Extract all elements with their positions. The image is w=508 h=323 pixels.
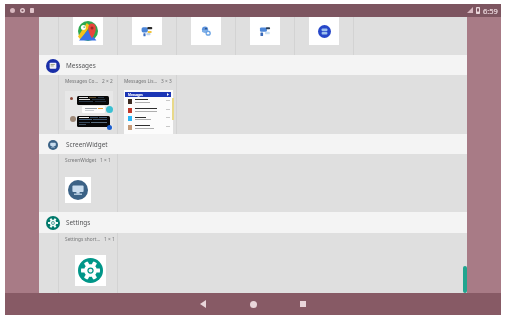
staticText: Messages: [128, 93, 143, 97]
button[interactable]: Messages Lis…: [118, 75, 176, 134]
button[interactable]: Messages: [39, 55, 467, 75]
button[interactable]: Recent apps: [278, 293, 328, 315]
staticText: 1 × 1: [104, 236, 115, 243]
staticText: 1 × 1: [100, 157, 111, 164]
button[interactable]: Photos: [177, 17, 235, 55]
staticText: 3 × 3: [161, 78, 172, 85]
button[interactable]: ScreenWidget: [59, 154, 117, 212]
button[interactable]: Messages Co…: [59, 75, 117, 134]
staticText: 6:59: [483, 6, 498, 16]
button[interactable]: Drive: [236, 17, 294, 55]
staticText: Messages Lis…: [124, 78, 158, 85]
staticText: Messages Co…: [65, 78, 99, 85]
staticText: Settings short…: [65, 236, 101, 243]
staticText: ScreenWidget: [66, 140, 108, 149]
button[interactable]: Play Store: [295, 17, 353, 55]
button[interactable]: Chrome: [118, 17, 176, 55]
staticText: 2 × 2: [102, 78, 113, 85]
button[interactable]: Settings short…: [59, 233, 117, 293]
button[interactable]: ScreenWidget: [39, 134, 467, 154]
staticText: ScreenWidget: [65, 157, 97, 164]
button[interactable]: Back: [178, 293, 228, 315]
button[interactable]: Home: [228, 293, 278, 315]
staticText: Messages: [66, 61, 96, 70]
staticText: Settings: [66, 218, 91, 227]
button[interactable]: Google Maps: [59, 17, 117, 55]
button[interactable]: Settings: [39, 212, 467, 233]
